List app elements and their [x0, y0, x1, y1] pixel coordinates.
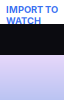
staticText: IMPORT TO WATCH: [6, 4, 58, 27]
